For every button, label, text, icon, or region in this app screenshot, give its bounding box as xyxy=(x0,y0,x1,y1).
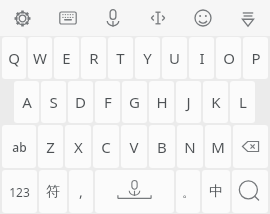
button[interactable]: M xyxy=(205,125,231,168)
button[interactable]: U xyxy=(162,37,187,79)
button[interactable]: S xyxy=(41,81,66,123)
staticText: N xyxy=(184,137,196,157)
staticText: Z xyxy=(46,137,55,157)
staticText: F xyxy=(104,92,112,112)
staticText: V xyxy=(129,137,139,157)
staticText: R xyxy=(89,48,99,68)
staticText: Q xyxy=(8,48,20,68)
button[interactable]: D xyxy=(68,81,93,123)
button[interactable]: E xyxy=(54,37,79,79)
button[interactable]: Switch keyboard xyxy=(45,0,90,36)
staticText: A xyxy=(22,92,32,112)
staticText: 中 xyxy=(209,183,223,201)
staticText: W xyxy=(33,48,47,68)
staticText: S xyxy=(49,92,58,112)
staticText: P xyxy=(251,48,261,68)
staticText: G xyxy=(129,92,140,112)
staticText: , xyxy=(79,182,83,201)
button[interactable]: J xyxy=(176,81,201,123)
staticText: C xyxy=(101,137,111,157)
staticText: E xyxy=(62,48,71,68)
staticText: I xyxy=(199,48,205,68)
button[interactable]: , xyxy=(69,170,93,213)
button[interactable]: Move cursor xyxy=(135,0,180,36)
staticText: J xyxy=(186,92,191,112)
staticText: H xyxy=(156,92,168,112)
button[interactable]: 。 xyxy=(176,170,200,213)
staticText: M xyxy=(211,137,225,157)
button[interactable]: O xyxy=(216,37,241,79)
button[interactable]: X xyxy=(65,125,91,168)
button[interactable]: R xyxy=(81,37,106,79)
button[interactable]: C xyxy=(93,125,119,168)
button[interactable]: G xyxy=(122,81,147,123)
button[interactable]: W xyxy=(28,37,52,79)
button[interactable]: Emoji xyxy=(180,0,225,36)
staticText: O xyxy=(223,48,235,68)
button[interactable]: Q xyxy=(2,37,26,79)
button[interactable]: L xyxy=(230,81,255,123)
button[interactable]: P xyxy=(243,37,268,79)
button[interactable]: Voice input xyxy=(90,0,135,36)
button[interactable]: B xyxy=(149,125,175,168)
button[interactable]: T xyxy=(108,37,133,79)
staticText: K xyxy=(211,92,221,112)
button[interactable]: Hide keyboard xyxy=(225,0,270,36)
staticText: D xyxy=(75,92,86,112)
staticText: 符 xyxy=(46,183,60,201)
button[interactable]: V xyxy=(121,125,147,168)
button[interactable]: Settings xyxy=(0,0,45,36)
staticText: L xyxy=(239,92,247,112)
staticText: U xyxy=(169,48,180,68)
button[interactable]: 符 xyxy=(39,170,67,213)
staticText: X xyxy=(74,137,83,157)
button[interactable]: K xyxy=(203,81,228,123)
staticText: 。 xyxy=(182,184,195,200)
button[interactable]: Backspace xyxy=(233,125,268,168)
button[interactable]: N xyxy=(177,125,203,168)
button[interactable]: 123 xyxy=(2,170,37,213)
button[interactable]: Y xyxy=(135,37,160,79)
button[interactable]: I xyxy=(189,37,214,79)
staticText: Y xyxy=(143,48,152,68)
button[interactable]: F xyxy=(95,81,120,123)
button[interactable]: Z xyxy=(38,125,63,168)
staticText: T xyxy=(116,48,125,68)
staticText: ab xyxy=(12,139,27,155)
button[interactable]: ab xyxy=(2,125,36,168)
button[interactable]: H xyxy=(149,81,174,123)
button[interactable]: A xyxy=(14,81,39,123)
staticText: 123 xyxy=(9,184,30,200)
button[interactable]: 中 xyxy=(202,170,230,213)
staticText: B xyxy=(157,137,167,157)
button[interactable]: Space xyxy=(95,170,174,213)
button[interactable]: Search xyxy=(232,170,268,213)
